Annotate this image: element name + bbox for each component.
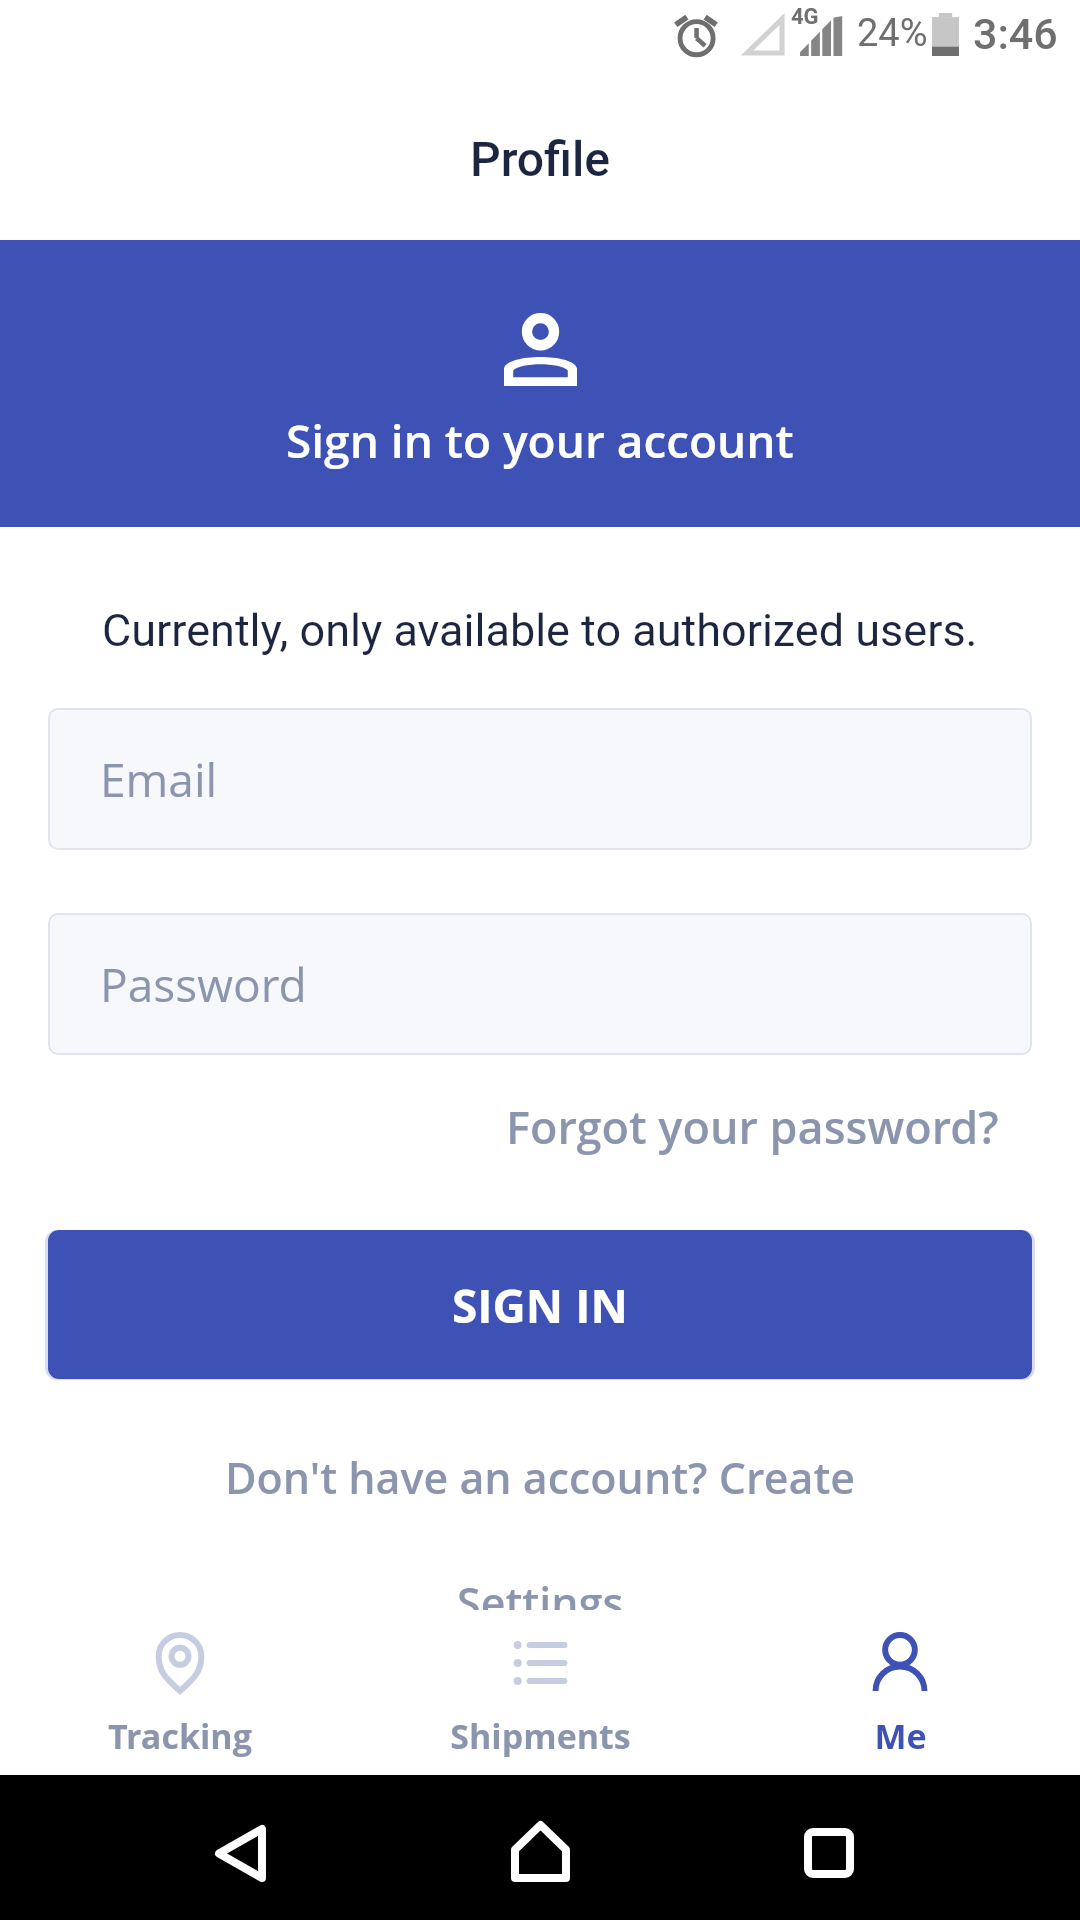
button[interactable]: Settings xyxy=(441,1565,640,1640)
staticText: 4G xyxy=(791,4,819,30)
staticText: 24% xyxy=(857,11,928,56)
button[interactable]: Tracking xyxy=(0,1610,360,1775)
staticText: Me xyxy=(874,1713,927,1759)
button[interactable]: SIGN IN xyxy=(48,1230,1032,1379)
staticText: Forgot your password? xyxy=(506,1096,999,1157)
staticText: Email xyxy=(100,748,218,811)
staticText: SIGN IN xyxy=(452,1274,628,1337)
button[interactable]: Don't have an account? Create xyxy=(209,1440,872,1515)
button[interactable]: Home xyxy=(490,1798,590,1898)
button[interactable]: Forgot your password? xyxy=(425,1088,1080,1165)
button[interactable]: Email xyxy=(48,708,1032,850)
staticText: Currently, only available to authorized … xyxy=(102,604,978,657)
staticText: Profile xyxy=(470,131,611,187)
staticText: Don't have an account? Create xyxy=(225,1448,856,1507)
button[interactable]: Password xyxy=(48,913,1032,1055)
staticText: Password xyxy=(100,953,307,1016)
button[interactable]: Recents xyxy=(780,1798,880,1898)
staticText: Tracking xyxy=(108,1713,252,1759)
button[interactable]: Back xyxy=(190,1798,290,1898)
staticText: Shipments xyxy=(450,1713,631,1759)
staticText: Settings xyxy=(457,1573,624,1632)
staticText: Sign in to your account xyxy=(286,409,794,472)
button[interactable]: Me xyxy=(720,1610,1080,1775)
staticText: 3:46 xyxy=(973,9,1058,59)
button[interactable]: Shipments xyxy=(360,1610,720,1775)
